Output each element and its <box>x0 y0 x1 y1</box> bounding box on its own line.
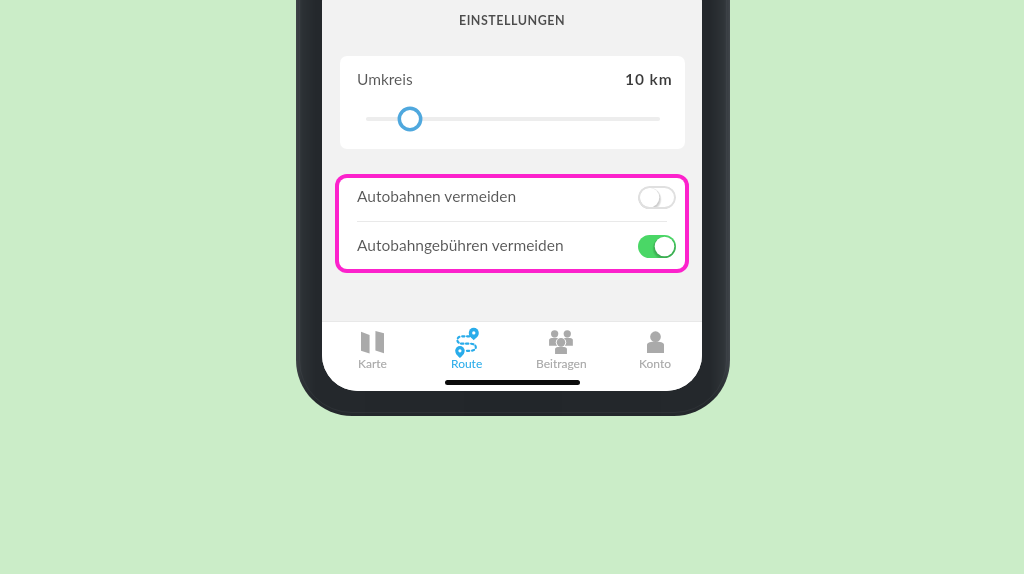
staticText: Route <box>451 356 483 370</box>
button[interactable]: Beitragen <box>514 322 608 376</box>
button[interactable]: Umkreis <box>340 56 685 149</box>
staticText: EINSTELLUNGEN <box>322 13 702 28</box>
button[interactable]: Autobahnen vermeiden <box>339 178 685 221</box>
staticText: 10 km <box>625 70 673 89</box>
button[interactable]: Autobahngebühren vermeiden <box>339 222 685 267</box>
staticText: Beitragen <box>536 356 587 370</box>
button[interactable]: Toggle on <box>638 235 676 258</box>
button[interactable]: Karte <box>325 322 420 376</box>
staticText: Umkreis <box>357 70 413 89</box>
staticText: Autobahngebühren vermeiden <box>357 236 564 255</box>
button[interactable]: Toggle off <box>638 186 676 209</box>
staticText: Konto <box>639 356 671 370</box>
staticText: Autobahnen vermeiden <box>357 187 517 206</box>
button[interactable]: Route <box>420 322 514 376</box>
staticText: Karte <box>358 356 387 370</box>
button[interactable]: Konto <box>608 322 702 376</box>
